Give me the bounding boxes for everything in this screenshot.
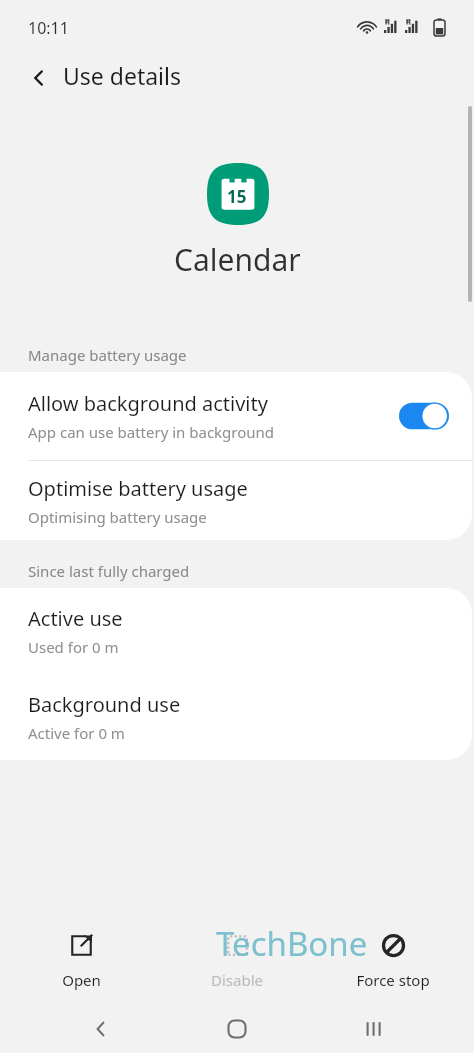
- button[interactable]: Back: [18, 57, 60, 99]
- button[interactable]: Home: [201, 1005, 273, 1053]
- staticText: Optimise battery usage: [28, 475, 248, 502]
- staticText: 10:11: [28, 17, 69, 39]
- staticText: Manage battery usage: [28, 345, 187, 365]
- button[interactable]: Force stop: [318, 918, 468, 996]
- staticText: Disable: [211, 970, 263, 990]
- button[interactable]: Optimise battery usage: [0, 461, 472, 540]
- staticText: Allow background activity: [28, 390, 268, 417]
- staticText: Optimising battery usage: [28, 507, 207, 527]
- button[interactable]: Background use: [0, 674, 472, 760]
- button[interactable]: Active use: [0, 588, 472, 674]
- staticText: Calendar: [174, 239, 301, 280]
- button[interactable]: Open: [6, 918, 156, 996]
- staticText: App can use battery in background: [28, 422, 275, 442]
- staticText: Background use: [28, 691, 181, 718]
- staticText: Since last fully charged: [28, 561, 190, 581]
- button[interactable]: Recent apps: [338, 1005, 410, 1053]
- staticText: 15: [227, 185, 247, 208]
- staticText: TechBone: [216, 921, 368, 966]
- staticText: Active for 0 m: [28, 723, 125, 743]
- staticText: Use details: [63, 60, 181, 91]
- button[interactable]: Allow background activity toggle: [398, 400, 450, 432]
- staticText: Open: [62, 970, 101, 990]
- button[interactable]: Back: [65, 1005, 137, 1053]
- button[interactable]: Disable: [162, 918, 312, 996]
- staticText: Active use: [28, 605, 123, 632]
- staticText: Used for 0 m: [28, 637, 119, 657]
- staticText: Force stop: [356, 970, 430, 990]
- button[interactable]: Allow background activity: [0, 372, 472, 460]
